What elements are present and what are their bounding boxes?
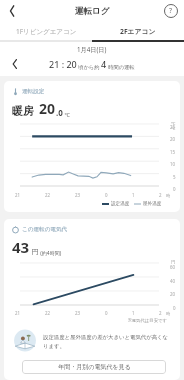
staticText: 21 : 20 [49,58,77,70]
staticText: 円 [171,259,176,264]
staticText: 22 [45,310,51,316]
button[interactable]: 年間・月別の電気代を見る [22,360,166,374]
staticText: 20 [39,99,56,118]
staticText: .0 [56,107,63,118]
staticText: 頃から約 [77,63,101,70]
staticText: 4 [101,58,107,70]
staticText: 1 [132,310,135,316]
staticText: 2 [159,310,162,316]
staticText: 5 [173,174,176,180]
staticText: 25 [170,124,176,130]
staticText: 23 [75,310,81,316]
staticText: 運転設定 [22,88,45,95]
button[interactable]: Previous [6,56,22,72]
staticText: 21 [15,192,21,198]
staticText: 年間・月別の電気代を見る [58,363,131,371]
staticText: (約4時間) [39,250,62,257]
staticText: 設定温度 [111,201,130,207]
staticText: 屋外温度 [143,201,162,207]
button[interactable]: Back [0,0,22,22]
staticText: 60 [170,264,176,270]
staticText: 23 [75,192,81,198]
staticText: 43 [12,237,30,257]
staticText: ℃ [171,126,176,132]
staticText: 1Fリビングエアコン [16,27,77,36]
button[interactable]: 2Fエアコン [92,22,184,40]
staticText: 暖房 [12,104,34,118]
staticText: 2 [159,192,162,198]
staticText: 0 [173,305,176,311]
staticText: ℃ [171,121,176,127]
staticText: 21 [15,310,21,316]
staticText: 22 [45,192,51,198]
staticText: 時 [166,311,171,316]
staticText: 時 [166,193,171,198]
staticText: 1月4日(日) [77,45,107,53]
staticText: 2Fエアコン [120,27,156,36]
staticText: 10 [170,161,176,167]
staticText: 1 [132,192,135,198]
staticText: 0 [105,192,108,198]
staticText: 40 [170,278,176,284]
staticText: 0 [105,310,108,316]
staticText: ※電気代は目安です [128,317,168,323]
staticText: 15 [170,149,176,155]
staticText: 円 [30,247,39,257]
staticText: 20 [170,291,176,297]
staticText: 20 [170,136,176,142]
staticText: 時間の運転 [107,63,135,70]
button[interactable]: 1Fリビングエアコン [0,22,92,40]
staticText: 運転ログ [75,6,110,17]
staticText: 0 [173,186,176,192]
staticText: ℃ [63,111,70,118]
staticText: この運転の電気代 [22,226,68,233]
button[interactable]: Help [163,3,179,19]
staticText: 設定温度と屋外温度の差が大きいと電気代が高くなります。 [43,334,172,349]
staticText: ? [169,6,173,16]
